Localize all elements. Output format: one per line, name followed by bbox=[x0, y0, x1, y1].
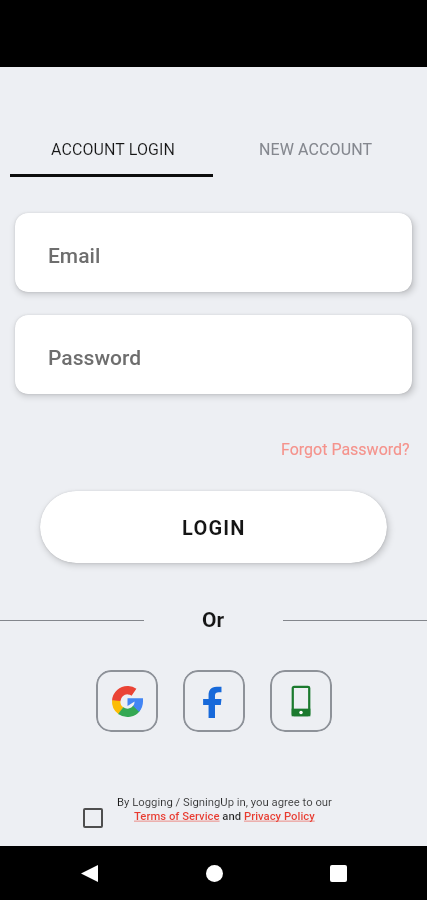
button[interactable]: Forgot Password? bbox=[281, 440, 410, 459]
staticText: LOGIN bbox=[182, 516, 246, 539]
button[interactable]: Agree to terms bbox=[83, 808, 103, 828]
staticText: Or bbox=[202, 608, 225, 633]
button[interactable]: Password bbox=[15, 315, 412, 394]
button[interactable]: Home bbox=[195, 854, 233, 892]
staticText: Email bbox=[48, 244, 101, 269]
staticText: Terms of Service and Privacy Policy bbox=[134, 810, 315, 823]
button[interactable]: Back bbox=[70, 854, 108, 892]
staticText: Password bbox=[48, 346, 142, 371]
button[interactable]: Sign in with Google bbox=[96, 670, 158, 732]
button[interactable]: Sign in with phone bbox=[270, 670, 332, 732]
staticText: ACCOUNT LOGIN bbox=[51, 140, 176, 159]
button[interactable]: Email bbox=[15, 213, 412, 292]
staticText: By Logging / SigningUp in, you agree to … bbox=[117, 796, 332, 809]
button[interactable]: ACCOUNT LOGIN bbox=[0, 140, 213, 178]
button[interactable]: Sign in with Facebook bbox=[183, 670, 245, 732]
button[interactable]: NEW ACCOUNT bbox=[213, 140, 427, 178]
staticText: NEW ACCOUNT bbox=[259, 140, 373, 159]
button[interactable]: Recents bbox=[319, 854, 357, 892]
button[interactable]: LOGIN bbox=[40, 491, 387, 563]
